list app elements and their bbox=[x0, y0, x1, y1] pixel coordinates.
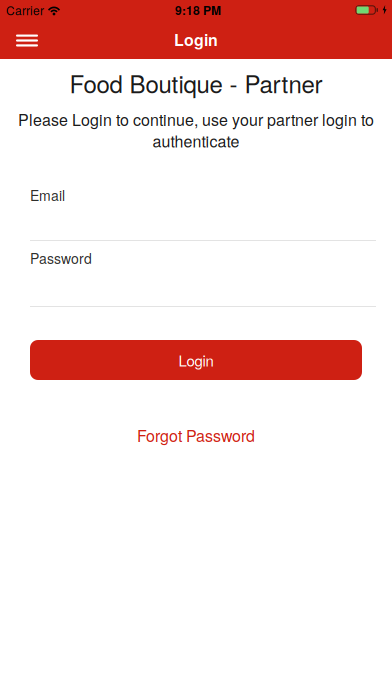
staticText: Forgot Password bbox=[137, 423, 255, 446]
staticText: Carrier bbox=[6, 1, 44, 19]
staticText: Password bbox=[30, 248, 92, 268]
staticText: 9:18 PM bbox=[175, 1, 221, 19]
staticText: Login bbox=[174, 28, 218, 51]
button[interactable]: Forgot Password bbox=[137, 423, 255, 446]
button[interactable]: Menu bbox=[0, 32, 38, 46]
staticText: Login bbox=[178, 349, 213, 371]
staticText: Email bbox=[30, 185, 65, 205]
staticText: Food Boutique - Partner bbox=[69, 66, 322, 100]
staticText: Please Login to continue, use your partn… bbox=[18, 107, 374, 130]
button[interactable]: Login bbox=[30, 340, 362, 380]
textField[interactable]: Password bbox=[30, 248, 211, 268]
staticText: authenticate bbox=[152, 129, 239, 152]
textField[interactable]: Email bbox=[30, 185, 211, 205]
